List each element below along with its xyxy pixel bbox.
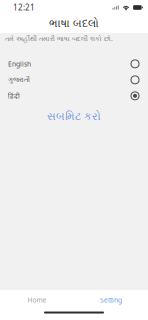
button[interactable]: Home — [0, 289, 74, 310]
button[interactable]: ગુજરાતી — [0, 72, 148, 88]
button[interactable]: સબમિટ કરો — [0, 104, 148, 130]
staticText: Home — [27, 296, 46, 304]
button[interactable]: English — [0, 56, 148, 72]
staticText: ગુજરાતી — [8, 77, 30, 83]
staticText: 12:21 — [13, 2, 35, 13]
staticText: English — [8, 59, 31, 68]
button[interactable]: हिंदी — [0, 88, 148, 104]
staticText: ભાષા બદલો — [49, 19, 99, 29]
staticText: તમે અહીંથી તમારી ભાષા બદલી શકો છો. — [5, 34, 113, 43]
staticText: Setting — [100, 296, 122, 304]
staticText: સબમિટ કરો — [47, 112, 101, 122]
button[interactable]: Setting — [74, 289, 148, 310]
staticText: हिंदी — [8, 91, 20, 100]
